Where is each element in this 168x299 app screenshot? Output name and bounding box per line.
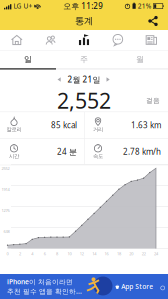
button[interactable]: Chat — [101, 30, 134, 50]
staticText: 2.78 km/h — [123, 146, 161, 157]
staticText: 21% — [138, 2, 152, 10]
staticText: 8 — [56, 251, 58, 256]
staticText: 오후 11:29 — [63, 1, 103, 11]
staticText: 0 — [6, 251, 8, 256]
staticText: 2,552 — [57, 86, 111, 115]
button[interactable]: 월 — [112, 50, 168, 68]
button[interactable]: Friends — [34, 30, 67, 50]
staticText: 걸음 — [146, 96, 160, 105]
staticText: 2월 21일 — [67, 74, 100, 85]
staticText: 2552 — [1, 166, 9, 171]
button[interactable]: Previous day — [51, 72, 67, 86]
staticText: 10 — [67, 251, 71, 256]
staticText: 일 — [24, 54, 32, 64]
staticText: 거리 — [93, 126, 103, 133]
staticText: App Store — [121, 282, 153, 291]
button[interactable]: Statistics — [67, 30, 101, 50]
staticText: 2 — [19, 251, 21, 256]
staticText: 주 — [80, 54, 88, 64]
button[interactable]: Home — [0, 30, 34, 50]
staticText: 20 — [129, 251, 133, 256]
staticText: 16 — [104, 251, 108, 256]
staticText: iPhone이 처음이라면 — [7, 277, 73, 286]
staticText: LG U+ — [13, 2, 32, 10]
staticText: 638 — [3, 229, 9, 234]
staticText: 14 — [92, 251, 96, 256]
staticText: 24 — [154, 251, 158, 256]
staticText: 12 — [80, 251, 84, 256]
staticText: 22 — [142, 251, 146, 256]
button[interactable]: 주 — [56, 50, 112, 68]
staticText: 속도 — [93, 153, 103, 159]
staticText: 1.63 km — [131, 120, 161, 130]
staticText: 4 — [31, 251, 33, 256]
staticText: 추천 필수 앱을 확인하세요 — [7, 287, 83, 296]
button[interactable]: App Store advertisement — [0, 274, 168, 299]
staticText: 85 kcal — [51, 120, 77, 130]
button[interactable]: 일 — [0, 50, 56, 68]
staticText: 24 분 — [57, 146, 77, 157]
staticText: 시간 — [9, 153, 19, 159]
staticText: 월 — [136, 54, 144, 64]
staticText: 1276 — [1, 208, 9, 213]
button[interactable]: News — [134, 30, 168, 50]
staticText: 18 — [117, 251, 121, 256]
staticText: 6 — [44, 251, 46, 256]
button[interactable]: Next day — [100, 72, 116, 86]
button[interactable]: Share — [143, 13, 163, 28]
staticText: 칼로리 — [6, 126, 21, 133]
staticText: 통계 — [75, 15, 93, 27]
staticText: 1914 — [1, 187, 9, 192]
